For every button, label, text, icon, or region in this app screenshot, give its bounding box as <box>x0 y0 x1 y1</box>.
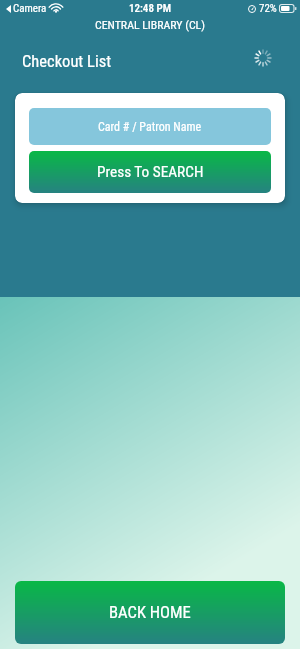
staticText: Camera <box>13 2 47 15</box>
staticText: Card # / Patron Name <box>98 120 202 134</box>
button[interactable]: Press To SEARCH <box>29 151 271 193</box>
staticText: 12:48 PM <box>129 2 171 15</box>
staticText: 72% <box>259 2 277 15</box>
button[interactable]: Card # / Patron Name <box>29 108 271 145</box>
button[interactable]: BACK HOME <box>15 581 285 644</box>
staticText: Press To SEARCH <box>97 163 204 181</box>
staticText: CENTRAL LIBRARY (CL) <box>95 18 205 32</box>
staticText: Checkout List <box>22 52 112 71</box>
staticText: BACK HOME <box>109 603 191 622</box>
other: Loading <box>252 47 274 69</box>
